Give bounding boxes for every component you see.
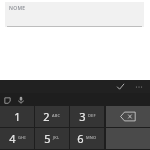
button[interactable]: Delete	[106, 106, 150, 127]
staticText: 4	[9, 131, 16, 146]
button[interactable]: More options	[131, 80, 147, 93]
button[interactable]: 5	[35, 128, 69, 149]
staticText: 6	[77, 131, 84, 146]
button[interactable]: 2	[35, 106, 69, 127]
staticText: 3	[79, 109, 86, 124]
staticText: GHI	[18, 135, 26, 140]
staticText: 2	[43, 109, 50, 124]
staticText: ABC	[52, 113, 61, 118]
button[interactable]: 4	[0, 128, 34, 149]
staticText: NOME	[9, 5, 26, 12]
staticText: MNO	[86, 135, 97, 140]
button[interactable]: Confirm	[112, 80, 128, 93]
button[interactable]: 1	[0, 106, 34, 127]
staticText: 1	[14, 109, 21, 124]
staticText: JKL	[53, 135, 60, 140]
button[interactable]: 6	[70, 128, 104, 149]
button[interactable]: 3	[70, 106, 104, 127]
staticText: DEF	[88, 113, 96, 118]
button[interactable]: Clipboard	[1, 94, 13, 106]
staticText: 5	[44, 131, 51, 146]
button[interactable]: NOME	[5, 2, 144, 27]
button[interactable]: Voice input	[15, 94, 27, 106]
